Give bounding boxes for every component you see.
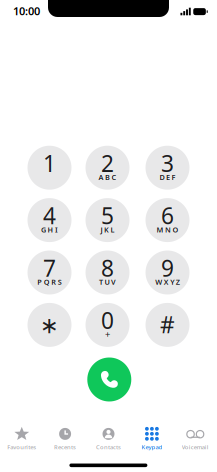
button[interactable]: Zero plus [85,303,129,347]
staticText: K [104,225,109,235]
staticText: W [155,277,162,287]
staticText: 4 [43,200,56,231]
staticText: 0 [101,305,114,336]
button[interactable]: Call [87,357,131,401]
staticText: ∗ [40,312,59,339]
staticText: P [37,277,42,287]
staticText: B [105,172,110,182]
button[interactable]: Recents [43,426,87,456]
staticText: 9 [161,252,174,283]
button[interactable]: Star [27,303,71,347]
staticText: 1 [43,148,56,179]
staticText: 10:00 [13,3,40,19]
staticText: O [172,225,178,235]
staticText: 5 [101,200,114,231]
staticText: U [104,277,109,287]
staticText: L [110,225,114,235]
staticText: I [55,225,58,235]
button[interactable]: 4 [27,198,71,242]
staticText: Q [44,277,50,287]
staticText: G [41,225,46,235]
staticText: 2 [101,148,114,179]
staticText: Keypad [141,443,162,451]
button[interactable]: Pound [145,303,189,347]
staticText: # [160,309,175,340]
staticText: Recents [54,443,76,451]
staticText: V [111,277,116,287]
staticText: X [164,277,169,287]
button[interactable]: Keypad [130,426,174,456]
staticText: J [100,225,102,235]
staticText: R [51,277,56,287]
staticText: 8 [101,252,114,283]
staticText: 6 [161,200,174,231]
staticText: Z [176,277,180,287]
staticText: E [166,172,170,182]
staticText: C [111,172,116,182]
button[interactable]: Voicemail [174,426,217,456]
staticText: Favourites [7,443,36,451]
button[interactable]: 6 [145,198,189,242]
button[interactable]: Contacts [87,426,130,456]
staticText: Contacts [96,443,121,451]
staticText: M [156,225,163,235]
button[interactable]: 5 [85,198,129,242]
staticText: Voicemail [182,443,209,451]
staticText: D [159,172,164,182]
button[interactable]: 7 [27,250,71,294]
staticText: F [171,172,175,182]
staticText: S [58,277,62,287]
staticText: 7 [43,252,56,283]
button[interactable]: 1 [27,146,71,190]
staticText: Y [170,277,174,287]
button[interactable]: 2 [85,146,129,190]
staticText: N [165,225,171,235]
staticText: T [99,277,103,287]
button[interactable]: 3 [145,146,189,190]
staticText: H [47,225,53,235]
button[interactable]: 9 [145,250,189,294]
staticText: A [98,172,103,182]
staticText: 3 [161,148,174,179]
button[interactable]: 8 [85,250,129,294]
staticText: + [105,328,110,340]
button[interactable]: Favourites [0,426,43,456]
